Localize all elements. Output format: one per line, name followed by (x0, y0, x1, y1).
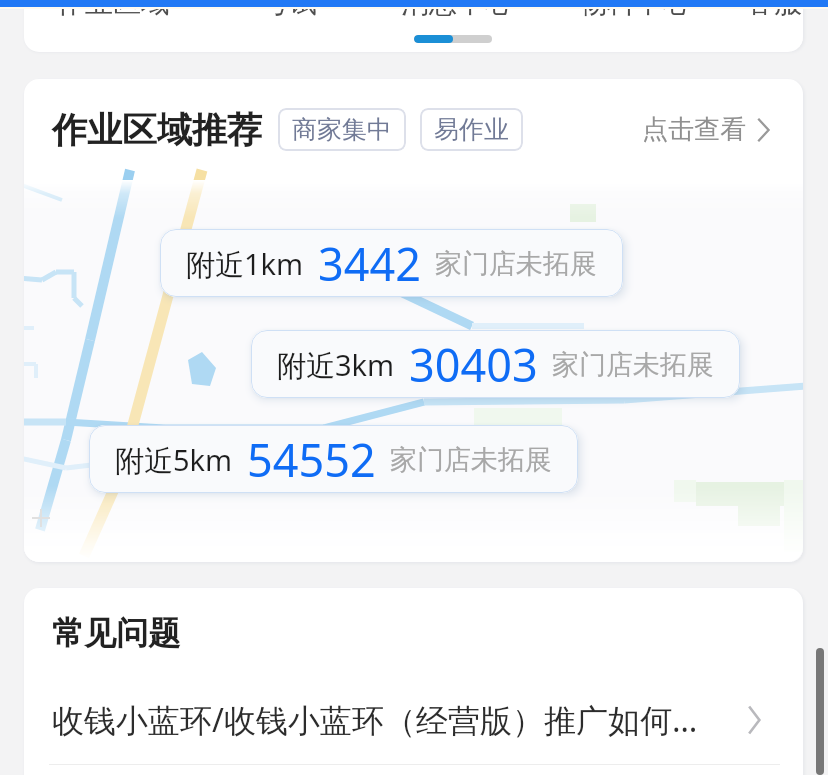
staticText: 3442 (318, 233, 421, 294)
button[interactable]: 附近1km (160, 229, 623, 297)
staticText: 易作业 (434, 114, 509, 145)
staticText: 收钱小蓝环/收钱小蓝环（经营版）推广如何… (52, 698, 737, 742)
staticText: 54552 (247, 429, 376, 490)
staticText: 附近3km (277, 345, 395, 385)
staticText: 家门店未拓展 (552, 348, 714, 382)
staticText: 消息中心 (401, 0, 513, 20)
staticText: 常见问题 (52, 613, 180, 653)
button[interactable]: 附近3km (251, 330, 740, 398)
button[interactable]: 易作业 (420, 108, 523, 151)
staticText: 家门店未拓展 (390, 443, 552, 477)
button[interactable]: 物料中心 (579, 0, 691, 20)
button[interactable]: 消息中心 (401, 0, 513, 20)
button[interactable]: Open recommended work-area map (24, 180, 803, 562)
staticText: 家门店未拓展 (435, 247, 597, 281)
staticText: 物料中心 (579, 0, 691, 20)
button[interactable]: 考试 (261, 0, 317, 20)
staticText: 商家集中 (292, 114, 392, 145)
staticText: 作业区域推荐 (52, 108, 262, 152)
staticText: 点击查看 (642, 113, 746, 146)
staticText: 客服 (746, 0, 802, 20)
button[interactable]: 收钱小蓝环/收钱小蓝环（经营版）推广如何… (24, 682, 803, 758)
button[interactable]: 附近5km (89, 425, 578, 493)
staticText: 作业区域 (57, 0, 169, 20)
button[interactable]: 作业区域 (57, 0, 169, 20)
staticText: 考试 (261, 0, 317, 20)
button[interactable]: 客服 (746, 0, 802, 20)
staticText: 30403 (409, 334, 538, 395)
staticText: 附近1km (186, 244, 304, 284)
button[interactable]: 点击查看 (642, 113, 777, 146)
button[interactable]: 商家集中 (278, 108, 406, 151)
staticText: 附近5km (115, 440, 233, 480)
